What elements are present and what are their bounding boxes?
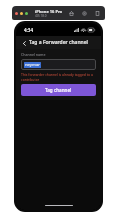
staticText: Tag channel: [45, 87, 72, 93]
staticText: Channel name: [21, 52, 46, 57]
staticText: iOS 18.0: [35, 14, 47, 18]
button[interactable]: Home: [68, 10, 75, 17]
button[interactable]: Zoom: [25, 12, 28, 15]
button[interactable]: neymar: [21, 59, 96, 70]
button[interactable]: Settings: [81, 10, 88, 17]
button[interactable]: Tag channel: [21, 84, 96, 96]
staticText: neymar: [25, 62, 40, 68]
button[interactable]: Rotate: [94, 10, 101, 17]
button[interactable]: Back: [19, 38, 29, 48]
button[interactable]: Close: [15, 12, 18, 15]
staticText: 4:34: [24, 27, 33, 33]
staticText: Tag a Forwarder channel: [29, 39, 88, 46]
staticText: iPhone 16 Pro: [35, 9, 63, 14]
button[interactable]: Minimize: [20, 12, 23, 15]
staticText: This forwarder channel is already tagged…: [21, 72, 96, 82]
